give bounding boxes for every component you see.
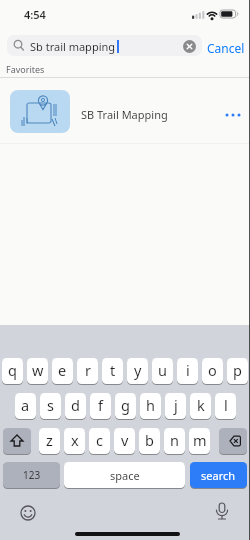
- button[interactable]: [212, 501, 232, 523]
- button[interactable]: g: [115, 393, 136, 419]
- button[interactable]: s: [40, 393, 61, 419]
- button[interactable]: i: [177, 358, 198, 384]
- button[interactable]: [219, 428, 247, 454]
- button[interactable]: h: [140, 393, 161, 419]
- staticText: e: [58, 360, 67, 380]
- button[interactable]: o: [202, 358, 223, 384]
- button[interactable]: Cancel: [207, 40, 245, 56]
- button[interactable]: search: [190, 462, 247, 488]
- button[interactable]: x: [64, 428, 85, 454]
- staticText: g: [121, 395, 130, 415]
- button[interactable]: space: [64, 462, 185, 488]
- staticText: s: [47, 395, 54, 415]
- button[interactable]: k: [190, 393, 211, 419]
- button[interactable]: [183, 40, 196, 53]
- button[interactable]: m: [189, 428, 210, 454]
- staticText: b: [145, 430, 154, 450]
- button[interactable]: 123: [3, 462, 60, 488]
- staticText: m: [193, 430, 207, 450]
- staticText: y: [134, 360, 142, 380]
- button[interactable]: [18, 503, 38, 523]
- staticText: r: [85, 360, 91, 380]
- button[interactable]: n: [164, 428, 185, 454]
- button[interactable]: u: [152, 358, 173, 384]
- staticText: t: [110, 360, 116, 380]
- button[interactable]: d: [65, 393, 86, 419]
- button[interactable]: y: [127, 358, 148, 384]
- button[interactable]: v: [114, 428, 135, 454]
- button[interactable]: l: [215, 393, 236, 419]
- staticText: a: [21, 395, 30, 415]
- staticText: 123: [23, 468, 41, 482]
- staticText: Sb trail mapping: [30, 39, 116, 54]
- button[interactable]: j: [165, 393, 186, 419]
- button[interactable]: e: [52, 358, 73, 384]
- button[interactable]: SB Trail Mapping: [0, 78, 250, 144]
- staticText: p: [233, 360, 242, 380]
- button[interactable]: a: [15, 393, 36, 419]
- button[interactable]: w: [27, 358, 48, 384]
- staticText: n: [170, 430, 179, 450]
- staticText: k: [197, 395, 205, 415]
- staticText: q: [8, 360, 17, 380]
- button[interactable]: [3, 428, 31, 454]
- staticText: v: [121, 430, 129, 450]
- staticText: i: [186, 360, 190, 380]
- staticText: u: [158, 360, 167, 380]
- button[interactable]: [7, 35, 202, 56]
- staticText: l: [224, 395, 228, 415]
- staticText: 4:54: [24, 7, 46, 22]
- staticText: o: [208, 360, 217, 380]
- staticText: f: [98, 395, 103, 415]
- button[interactable]: p: [227, 358, 248, 384]
- staticText: space: [110, 468, 140, 483]
- button[interactable]: b: [139, 428, 160, 454]
- button[interactable]: f: [90, 393, 111, 419]
- staticText: h: [146, 395, 155, 415]
- staticText: SB Trail Mapping: [81, 107, 168, 122]
- staticText: d: [71, 395, 80, 415]
- button[interactable]: c: [89, 428, 110, 454]
- button[interactable]: t: [102, 358, 123, 384]
- staticText: j: [174, 395, 178, 415]
- staticText: x: [71, 430, 79, 450]
- staticText: w: [32, 360, 44, 380]
- button[interactable]: z: [39, 428, 60, 454]
- staticText: Favorites: [6, 63, 45, 75]
- button[interactable]: q: [2, 358, 23, 384]
- staticText: c: [96, 430, 103, 450]
- button[interactable]: r: [77, 358, 98, 384]
- staticText: z: [46, 430, 53, 450]
- staticText: search: [201, 468, 236, 483]
